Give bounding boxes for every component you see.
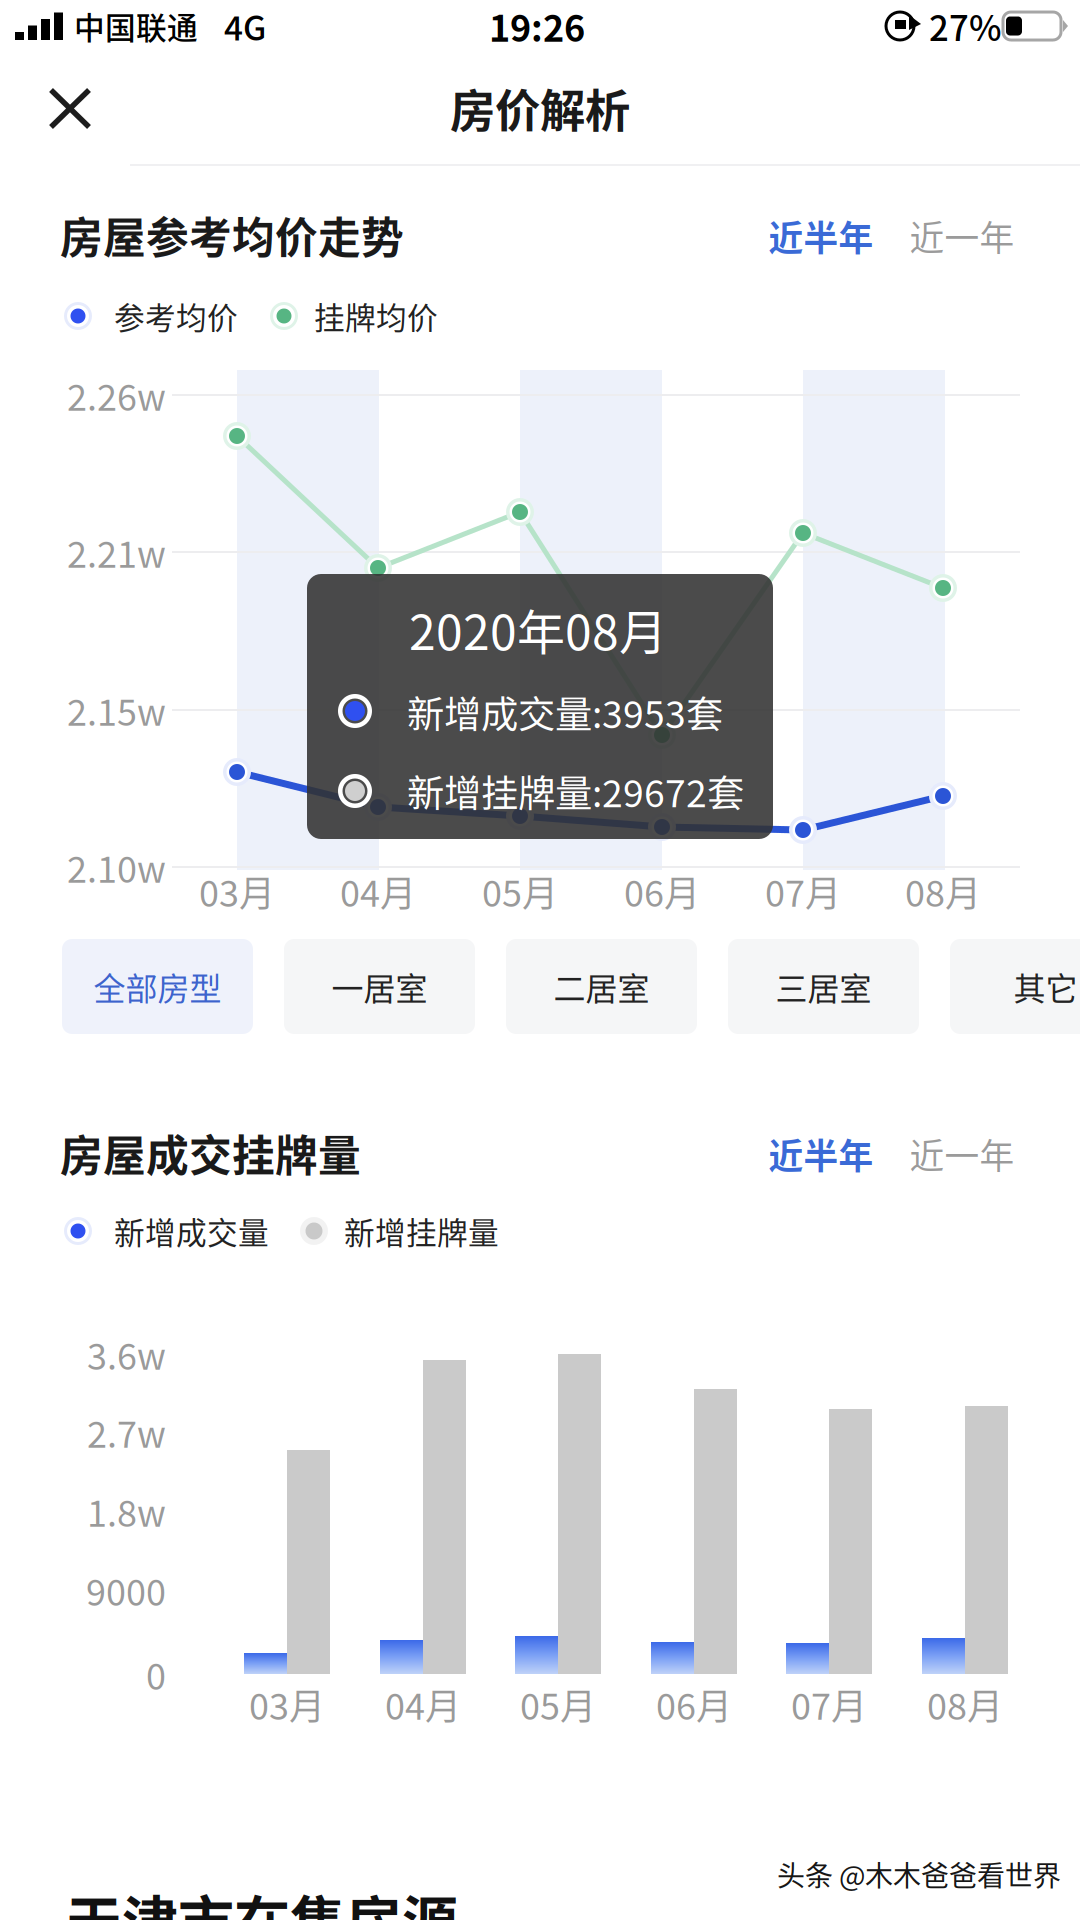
staticText: 挂牌均价	[314, 294, 438, 338]
staticText: 08月	[927, 1678, 1003, 1730]
staticText: 新增成交量:3953套	[407, 685, 723, 739]
staticText: 05月	[482, 865, 558, 917]
button[interactable]: 二居室	[506, 939, 697, 1034]
button[interactable]: 三居室	[728, 939, 919, 1034]
staticText: 近一年	[909, 211, 1014, 261]
staticText: 近半年	[768, 1129, 873, 1179]
button[interactable]: 一居室	[284, 939, 475, 1034]
staticText: 三居室	[775, 963, 871, 1010]
staticText: 头条 @木木爸爸看世界	[777, 1854, 1061, 1894]
staticText: 一居室	[331, 963, 427, 1010]
button[interactable]: 全部房型	[62, 939, 253, 1034]
staticText: 19:26	[489, 0, 585, 52]
staticText: 03月	[249, 1678, 325, 1730]
staticText: 新增挂牌量	[344, 1209, 499, 1253]
staticText: 9000	[86, 1564, 166, 1616]
staticText: 中国联通	[74, 4, 198, 48]
staticText: 全部房型	[93, 963, 221, 1010]
staticText: 2020年08月	[409, 594, 667, 664]
staticText: 2.21w	[67, 526, 166, 578]
staticText: 天津市在售房源	[66, 1877, 458, 1920]
staticText: 二居室	[553, 963, 649, 1010]
staticText: 新增成交量	[114, 1209, 269, 1253]
staticText: 3.6w	[87, 1328, 166, 1380]
button[interactable]: 其它	[950, 939, 1080, 1034]
staticText: 近一年	[909, 1129, 1014, 1179]
staticText: 06月	[624, 865, 700, 917]
staticText: 房屋参考均价走势	[60, 204, 404, 266]
staticText: 0	[146, 1648, 166, 1700]
staticText: 参考均价	[114, 294, 238, 338]
staticText: 04月	[340, 865, 416, 917]
staticText: 房屋成交挂牌量	[60, 1122, 361, 1184]
button[interactable]: 近半年	[761, 204, 881, 268]
staticText: 27%	[929, 1, 1002, 51]
staticText: 03月	[199, 865, 275, 917]
staticText: 07月	[765, 865, 841, 917]
staticText: 新增挂牌量:29672套	[407, 764, 744, 818]
staticText: 06月	[656, 1678, 732, 1730]
button[interactable]: 近一年	[902, 204, 1022, 268]
staticText: 05月	[520, 1678, 596, 1730]
staticText: 2.7w	[87, 1406, 166, 1458]
staticText: 07月	[791, 1678, 867, 1730]
staticText: 2.10w	[67, 841, 166, 893]
staticText: 其它	[1013, 963, 1077, 1010]
button[interactable]: 近一年	[902, 1122, 1022, 1186]
staticText: 2.15w	[67, 684, 166, 736]
staticText: 2.26w	[67, 369, 166, 421]
button[interactable]: 近半年	[761, 1122, 881, 1186]
staticText: 4G	[224, 2, 266, 50]
staticText: 近半年	[768, 211, 873, 261]
staticText: 04月	[385, 1678, 461, 1730]
staticText: 1.8w	[87, 1485, 166, 1537]
button[interactable]: Close	[22, 61, 118, 156]
staticText: 08月	[905, 865, 981, 917]
staticText: 房价解析	[450, 75, 630, 141]
